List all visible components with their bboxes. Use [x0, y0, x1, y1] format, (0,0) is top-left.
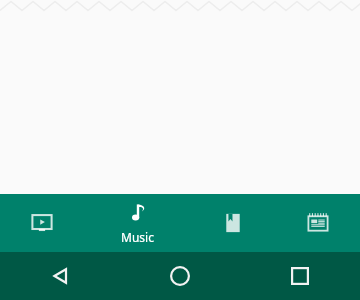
button[interactable]: Movies & TV	[0, 194, 84, 252]
button[interactable]: Books	[190, 194, 275, 252]
button[interactable]: Music	[84, 194, 190, 252]
button[interactable]: Newsstand	[275, 194, 360, 252]
staticText: Music	[121, 229, 154, 245]
button[interactable]: Home	[120, 252, 240, 300]
button[interactable]: Back	[0, 252, 120, 300]
button[interactable]: Recents	[240, 252, 360, 300]
